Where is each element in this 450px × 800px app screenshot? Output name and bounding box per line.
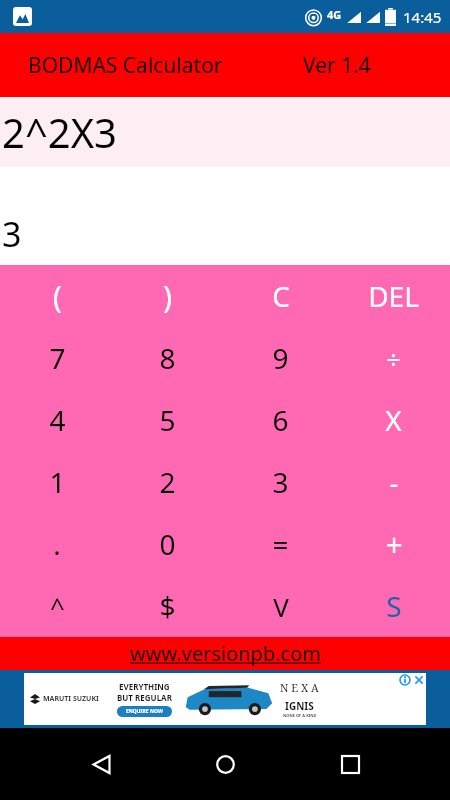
staticText: 1 <box>49 463 66 501</box>
staticText: $ <box>159 587 176 625</box>
button[interactable]: 7 <box>0 327 112 389</box>
button[interactable]: = <box>224 513 337 575</box>
button[interactable]: . <box>0 513 112 575</box>
staticText: 6 <box>272 401 289 439</box>
staticText: 3 <box>272 463 289 501</box>
staticText: 8 <box>159 339 176 377</box>
staticText: V <box>273 589 289 624</box>
button[interactable]: 3 <box>224 451 337 513</box>
staticText: 9 <box>272 339 289 377</box>
staticText: 4G <box>327 7 342 22</box>
button[interactable]: S <box>337 575 450 637</box>
staticText: 2^2X3 <box>2 105 117 159</box>
staticText: ^ <box>50 589 65 624</box>
button[interactable]: C <box>224 265 337 327</box>
staticText: S <box>386 587 402 625</box>
button[interactable]: 9 <box>224 327 337 389</box>
staticText: 4 <box>49 401 66 439</box>
button[interactable]: MARUTI SUZUKI <box>0 670 450 728</box>
staticText: 14:45 <box>403 7 442 27</box>
button[interactable]: www.versionpb.com <box>0 637 450 670</box>
staticText: C <box>272 277 290 315</box>
button[interactable]: V <box>224 575 337 637</box>
button[interactable]: 8 <box>112 327 224 389</box>
staticText: BUT REGULAR <box>117 692 172 703</box>
staticText: = <box>272 525 289 563</box>
button[interactable]: ^ <box>0 575 112 637</box>
staticText: BODMAS Calculator <box>28 51 223 80</box>
staticText: - <box>389 463 399 501</box>
staticText: NONE OF A KIND <box>283 713 317 718</box>
button[interactable]: DEL <box>337 265 450 327</box>
button[interactable]: Ad info <box>399 674 411 686</box>
button[interactable]: Home <box>201 740 249 788</box>
button[interactable]: 4 <box>0 389 112 451</box>
button[interactable]: X <box>337 389 450 451</box>
staticText: 2 <box>159 463 176 501</box>
staticText: IGNIS <box>285 699 314 713</box>
button[interactable]: 2 <box>112 451 224 513</box>
staticText: 0 <box>159 525 176 563</box>
staticText: ÷ <box>386 341 401 376</box>
staticText: ) <box>163 276 172 317</box>
button[interactable]: ( <box>0 265 112 327</box>
staticText: www.versionpb.com <box>130 640 321 667</box>
button[interactable]: 2^2X3 <box>0 97 450 167</box>
button[interactable]: Back <box>77 740 125 788</box>
button[interactable]: + <box>337 513 450 575</box>
button[interactable]: 0 <box>112 513 224 575</box>
staticText: 7 <box>49 339 66 377</box>
button[interactable]: 1 <box>0 451 112 513</box>
staticText: X <box>385 401 402 439</box>
staticText: Ver 1.4 <box>303 51 371 80</box>
button[interactable]: ) <box>112 265 224 327</box>
button[interactable]: 5 <box>112 389 224 451</box>
staticText: DEL <box>368 277 419 315</box>
staticText: MARUTI SUZUKI <box>43 694 99 704</box>
staticText: 3 <box>2 211 22 257</box>
staticText: + <box>385 524 403 565</box>
staticText: EVERYTHING <box>119 681 170 692</box>
button[interactable]: 6 <box>224 389 337 451</box>
staticText: 5 <box>159 401 176 439</box>
button[interactable]: - <box>337 451 450 513</box>
button[interactable]: ÷ <box>337 327 450 389</box>
staticText: ( <box>53 276 62 317</box>
staticText: N E X A <box>280 680 319 695</box>
staticText: . <box>53 525 61 563</box>
button[interactable]: $ <box>112 575 224 637</box>
button[interactable]: Recents <box>326 740 374 788</box>
button[interactable]: Close ad <box>413 674 425 686</box>
staticText: ENQUIRE NOW <box>126 708 163 715</box>
